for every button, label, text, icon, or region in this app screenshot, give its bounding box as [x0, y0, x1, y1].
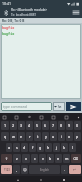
- staticText: k: [63, 145, 66, 150]
- staticText: Rx: <Bluetooth module>: [11, 8, 48, 12]
- button[interactable]: English: [29, 165, 60, 174]
- staticText: 10:41: [2, 1, 11, 6]
- button[interactable]: f: [29, 143, 36, 152]
- button[interactable]: ⌫: [71, 154, 81, 163]
- button[interactable]: b: [47, 154, 54, 163]
- button[interactable]: type command: [3, 102, 52, 111]
- staticText: t: [37, 134, 39, 139]
- button[interactable]: a: [6, 143, 12, 152]
- button[interactable]: d: [21, 143, 28, 152]
- button[interactable]: \n: [54, 102, 64, 111]
- staticText: ⌫: [73, 157, 79, 161]
- button[interactable]: 3: [18, 121, 25, 130]
- staticText: 8: [60, 123, 63, 128]
- staticText: type command: [3, 104, 27, 109]
- staticText: l: [72, 145, 73, 150]
- button[interactable]: k: [61, 143, 68, 152]
- button[interactable]: Menu: [71, 8, 80, 17]
- staticText: \n: [58, 105, 62, 109]
- button[interactable]: ,: [13, 165, 20, 174]
- button[interactable]: 0: [74, 121, 81, 130]
- button[interactable]: w: [10, 132, 17, 141]
- button[interactable]: q: [1, 132, 9, 141]
- staticText: g: [39, 145, 42, 150]
- staticText: i: [61, 134, 62, 139]
- staticText: z: [16, 156, 18, 161]
- button[interactable]: t: [34, 132, 41, 141]
- staticText: 9: [68, 123, 71, 128]
- button[interactable]: c: [31, 154, 38, 163]
- button[interactable]: y: [42, 132, 49, 141]
- staticText: 2: [12, 123, 15, 128]
- button[interactable]: ⇧: [1, 154, 12, 163]
- button[interactable]: e: [18, 132, 25, 141]
- button[interactable]: z: [13, 154, 21, 163]
- button[interactable]: Send: [66, 102, 81, 111]
- staticText: Rx: 0 B, Tx: 0 B: [2, 19, 25, 23]
- button[interactable]: Keyboard tool 2: [14, 115, 18, 119]
- button[interactable]: .: [61, 165, 68, 174]
- staticText: r: [29, 134, 31, 139]
- staticText: h: [47, 145, 50, 150]
- staticText: w: [12, 134, 15, 139]
- staticText: 4: [28, 123, 31, 128]
- button[interactable]: u: [50, 132, 57, 141]
- button[interactable]: Keyboard tool 3: [27, 115, 31, 119]
- staticText: y: [45, 134, 47, 139]
- staticText: 3: [20, 123, 23, 128]
- staticText: 0: [76, 123, 79, 128]
- staticText: 6: [44, 123, 47, 128]
- staticText: c: [34, 156, 36, 161]
- button[interactable]: p: [74, 132, 81, 141]
- button[interactable]: 5: [34, 121, 41, 130]
- staticText: ?123: [4, 168, 10, 172]
- staticText: English: [40, 168, 49, 172]
- button[interactable]: Keyboard tool 5: [51, 115, 55, 119]
- button[interactable]: Recents: [59, 177, 69, 182]
- staticText: m: [65, 156, 69, 161]
- button[interactable]: g: [37, 143, 44, 152]
- button[interactable]: h: [45, 143, 52, 152]
- staticText: 1: [4, 123, 7, 128]
- button[interactable]: ☺: [21, 165, 28, 174]
- button[interactable]: 2: [10, 121, 17, 130]
- button[interactable]: 6: [42, 121, 49, 130]
- button[interactable]: l: [69, 143, 76, 152]
- staticText: 5: [36, 123, 39, 128]
- button[interactable]: ↵: [69, 165, 81, 174]
- button[interactable]: ?123: [1, 165, 12, 174]
- staticText: s: [16, 145, 18, 150]
- button[interactable]: 9: [66, 121, 73, 130]
- button[interactable]: bugfix: [2, 25, 81, 99]
- staticText: x: [25, 156, 27, 161]
- staticText: .: [64, 167, 65, 172]
- staticText: f: [32, 145, 34, 150]
- button[interactable]: 1: [1, 121, 9, 130]
- button[interactable]: Bluetooth: [2, 9, 10, 17]
- button[interactable]: 7: [50, 121, 57, 130]
- staticText: n: [57, 156, 60, 161]
- staticText: b: [49, 156, 52, 161]
- button[interactable]: Keyboard tool 7: [76, 115, 80, 119]
- button[interactable]: v: [39, 154, 46, 163]
- button[interactable]: Back: [13, 177, 23, 182]
- button[interactable]: r: [26, 132, 33, 141]
- button[interactable]: o: [66, 132, 73, 141]
- button[interactable]: 8: [58, 121, 65, 130]
- staticText: p: [76, 134, 79, 139]
- button[interactable]: Keyboard tool 1: [2, 115, 6, 119]
- staticText: j: [56, 145, 57, 150]
- button[interactable]: Keyboard tool 4: [39, 115, 43, 119]
- button[interactable]: j: [53, 143, 60, 152]
- button[interactable]: i: [58, 132, 65, 141]
- button[interactable]: n: [55, 154, 62, 163]
- button[interactable]: s: [13, 143, 20, 152]
- button[interactable]: x: [22, 154, 30, 163]
- staticText: e: [20, 134, 23, 139]
- staticText: Tx: localhost:8881: [11, 13, 37, 17]
- button[interactable]: m: [63, 154, 70, 163]
- staticText: ⇧: [5, 157, 9, 161]
- button[interactable]: Keyboard tool 6: [64, 115, 68, 119]
- button[interactable]: Home: [36, 177, 46, 182]
- button[interactable]: 4: [26, 121, 33, 130]
